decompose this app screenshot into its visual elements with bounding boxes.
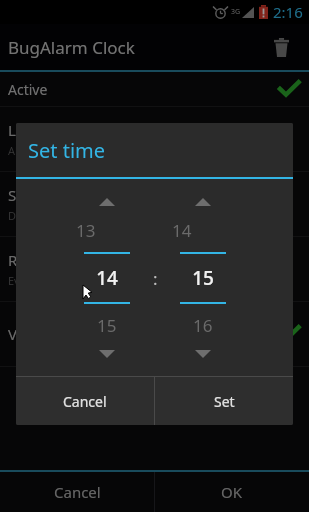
button[interactable]: Label: [0, 107, 309, 171]
staticText: Every day: [8, 273, 58, 288]
staticText: :: [153, 267, 158, 290]
button[interactable]: Decrement: [76, 343, 138, 365]
staticText: OK: [221, 482, 243, 502]
staticText: 16: [193, 314, 213, 337]
button[interactable]: Cancel: [0, 472, 154, 512]
staticText: Set time: [28, 137, 106, 164]
button[interactable]: Increment: [172, 191, 234, 213]
button[interactable]: Set: [155, 377, 293, 425]
button[interactable]: Vibrate: [0, 302, 309, 366]
staticText: Sound: [8, 185, 54, 205]
staticText: 2:16: [273, 2, 303, 22]
button[interactable]: Sound: [0, 172, 309, 236]
staticText: Set: [214, 392, 235, 411]
button[interactable]: Cancel: [16, 377, 154, 425]
staticText: Repeat: [8, 250, 58, 270]
staticText: Alarm: [8, 143, 39, 158]
button[interactable]: Repeat: [0, 237, 309, 301]
staticText: 13: [76, 219, 138, 242]
button[interactable]: OK: [155, 472, 309, 512]
staticText: Cancel: [63, 392, 107, 411]
staticText: 15: [172, 265, 234, 291]
staticText: 14: [172, 219, 234, 242]
staticText: Default ringtone: [8, 208, 94, 223]
staticText: 14: [76, 265, 138, 291]
button[interactable]: Active: [0, 72, 309, 106]
button[interactable]: Decrement: [172, 343, 234, 365]
staticText: Vibrate: [8, 324, 59, 344]
staticText: BugAlarm Clock: [8, 36, 135, 59]
staticText: Active: [8, 80, 48, 99]
button[interactable]: Increment: [76, 191, 138, 213]
staticText: Cancel: [54, 482, 101, 502]
staticText: 15: [97, 314, 117, 337]
staticText: 3G: [231, 7, 241, 17]
button[interactable]: Delete: [261, 27, 301, 67]
staticText: Label: [8, 120, 46, 140]
